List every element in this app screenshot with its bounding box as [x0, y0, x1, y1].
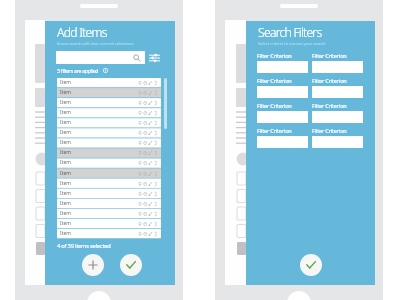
staticText: A new search will clear current selectio… — [57, 41, 134, 47]
staticText: Filter Criterion — [312, 102, 347, 110]
staticText: Item — [60, 109, 71, 116]
staticText: Item — [60, 99, 71, 106]
staticText: Filter Criterion — [257, 77, 292, 85]
staticText: Item — [60, 220, 71, 227]
button[interactable]: Item — [57, 229, 161, 238]
staticText: Item — [60, 190, 71, 197]
staticText: Item — [60, 129, 71, 136]
button[interactable]: Item — [57, 209, 161, 218]
staticText: Filter Criterion — [257, 127, 292, 135]
staticText: Filter Criterion — [312, 77, 347, 85]
button[interactable]: Add item — [82, 254, 104, 276]
staticText: Item — [60, 149, 71, 156]
button[interactable]: Confirm — [120, 254, 142, 276]
button[interactable]: Item — [57, 169, 161, 178]
staticText: Item — [60, 210, 71, 217]
staticText: Item — [60, 230, 71, 237]
staticText: Item — [60, 139, 71, 146]
button[interactable]: Confirm — [300, 254, 322, 276]
staticText: Add Items — [57, 24, 107, 41]
button[interactable]: Item — [57, 189, 161, 198]
button[interactable]: Item — [57, 88, 161, 97]
staticText: Filter Criterion — [312, 52, 347, 60]
staticText: Filter Criterion — [312, 127, 347, 135]
button[interactable]: Item — [57, 118, 161, 127]
button[interactable]: Search — [56, 51, 145, 64]
staticText: Search Filters — [258, 24, 322, 41]
button[interactable]: Item — [57, 158, 161, 167]
staticText: Item — [60, 170, 71, 177]
button[interactable]: Item — [57, 128, 161, 137]
button[interactable]: Item — [57, 219, 161, 228]
staticText: Filter Criterion — [257, 102, 292, 110]
staticText: Select criteria to narrow your search — [258, 41, 326, 47]
staticText: 4 of 39 items selected — [57, 242, 111, 250]
staticText: Item — [60, 200, 71, 207]
button[interactable]: Item — [57, 138, 161, 147]
staticText: Item — [60, 119, 71, 126]
button[interactable]: Item — [57, 199, 161, 208]
staticText: Item — [60, 180, 71, 187]
button[interactable]: Item — [57, 108, 161, 117]
button[interactable]: Filter settings — [148, 53, 160, 63]
button[interactable]: Item — [57, 179, 161, 188]
button[interactable]: Item — [57, 98, 161, 107]
button[interactable]: Item — [57, 148, 161, 157]
staticText: Item — [60, 79, 71, 86]
staticText: Item — [60, 89, 71, 96]
button[interactable]: Item — [57, 78, 161, 87]
staticText: 3 filters are applied — [57, 67, 99, 74]
staticText: Filter Criterion — [257, 52, 292, 60]
staticText: Item — [60, 159, 71, 166]
